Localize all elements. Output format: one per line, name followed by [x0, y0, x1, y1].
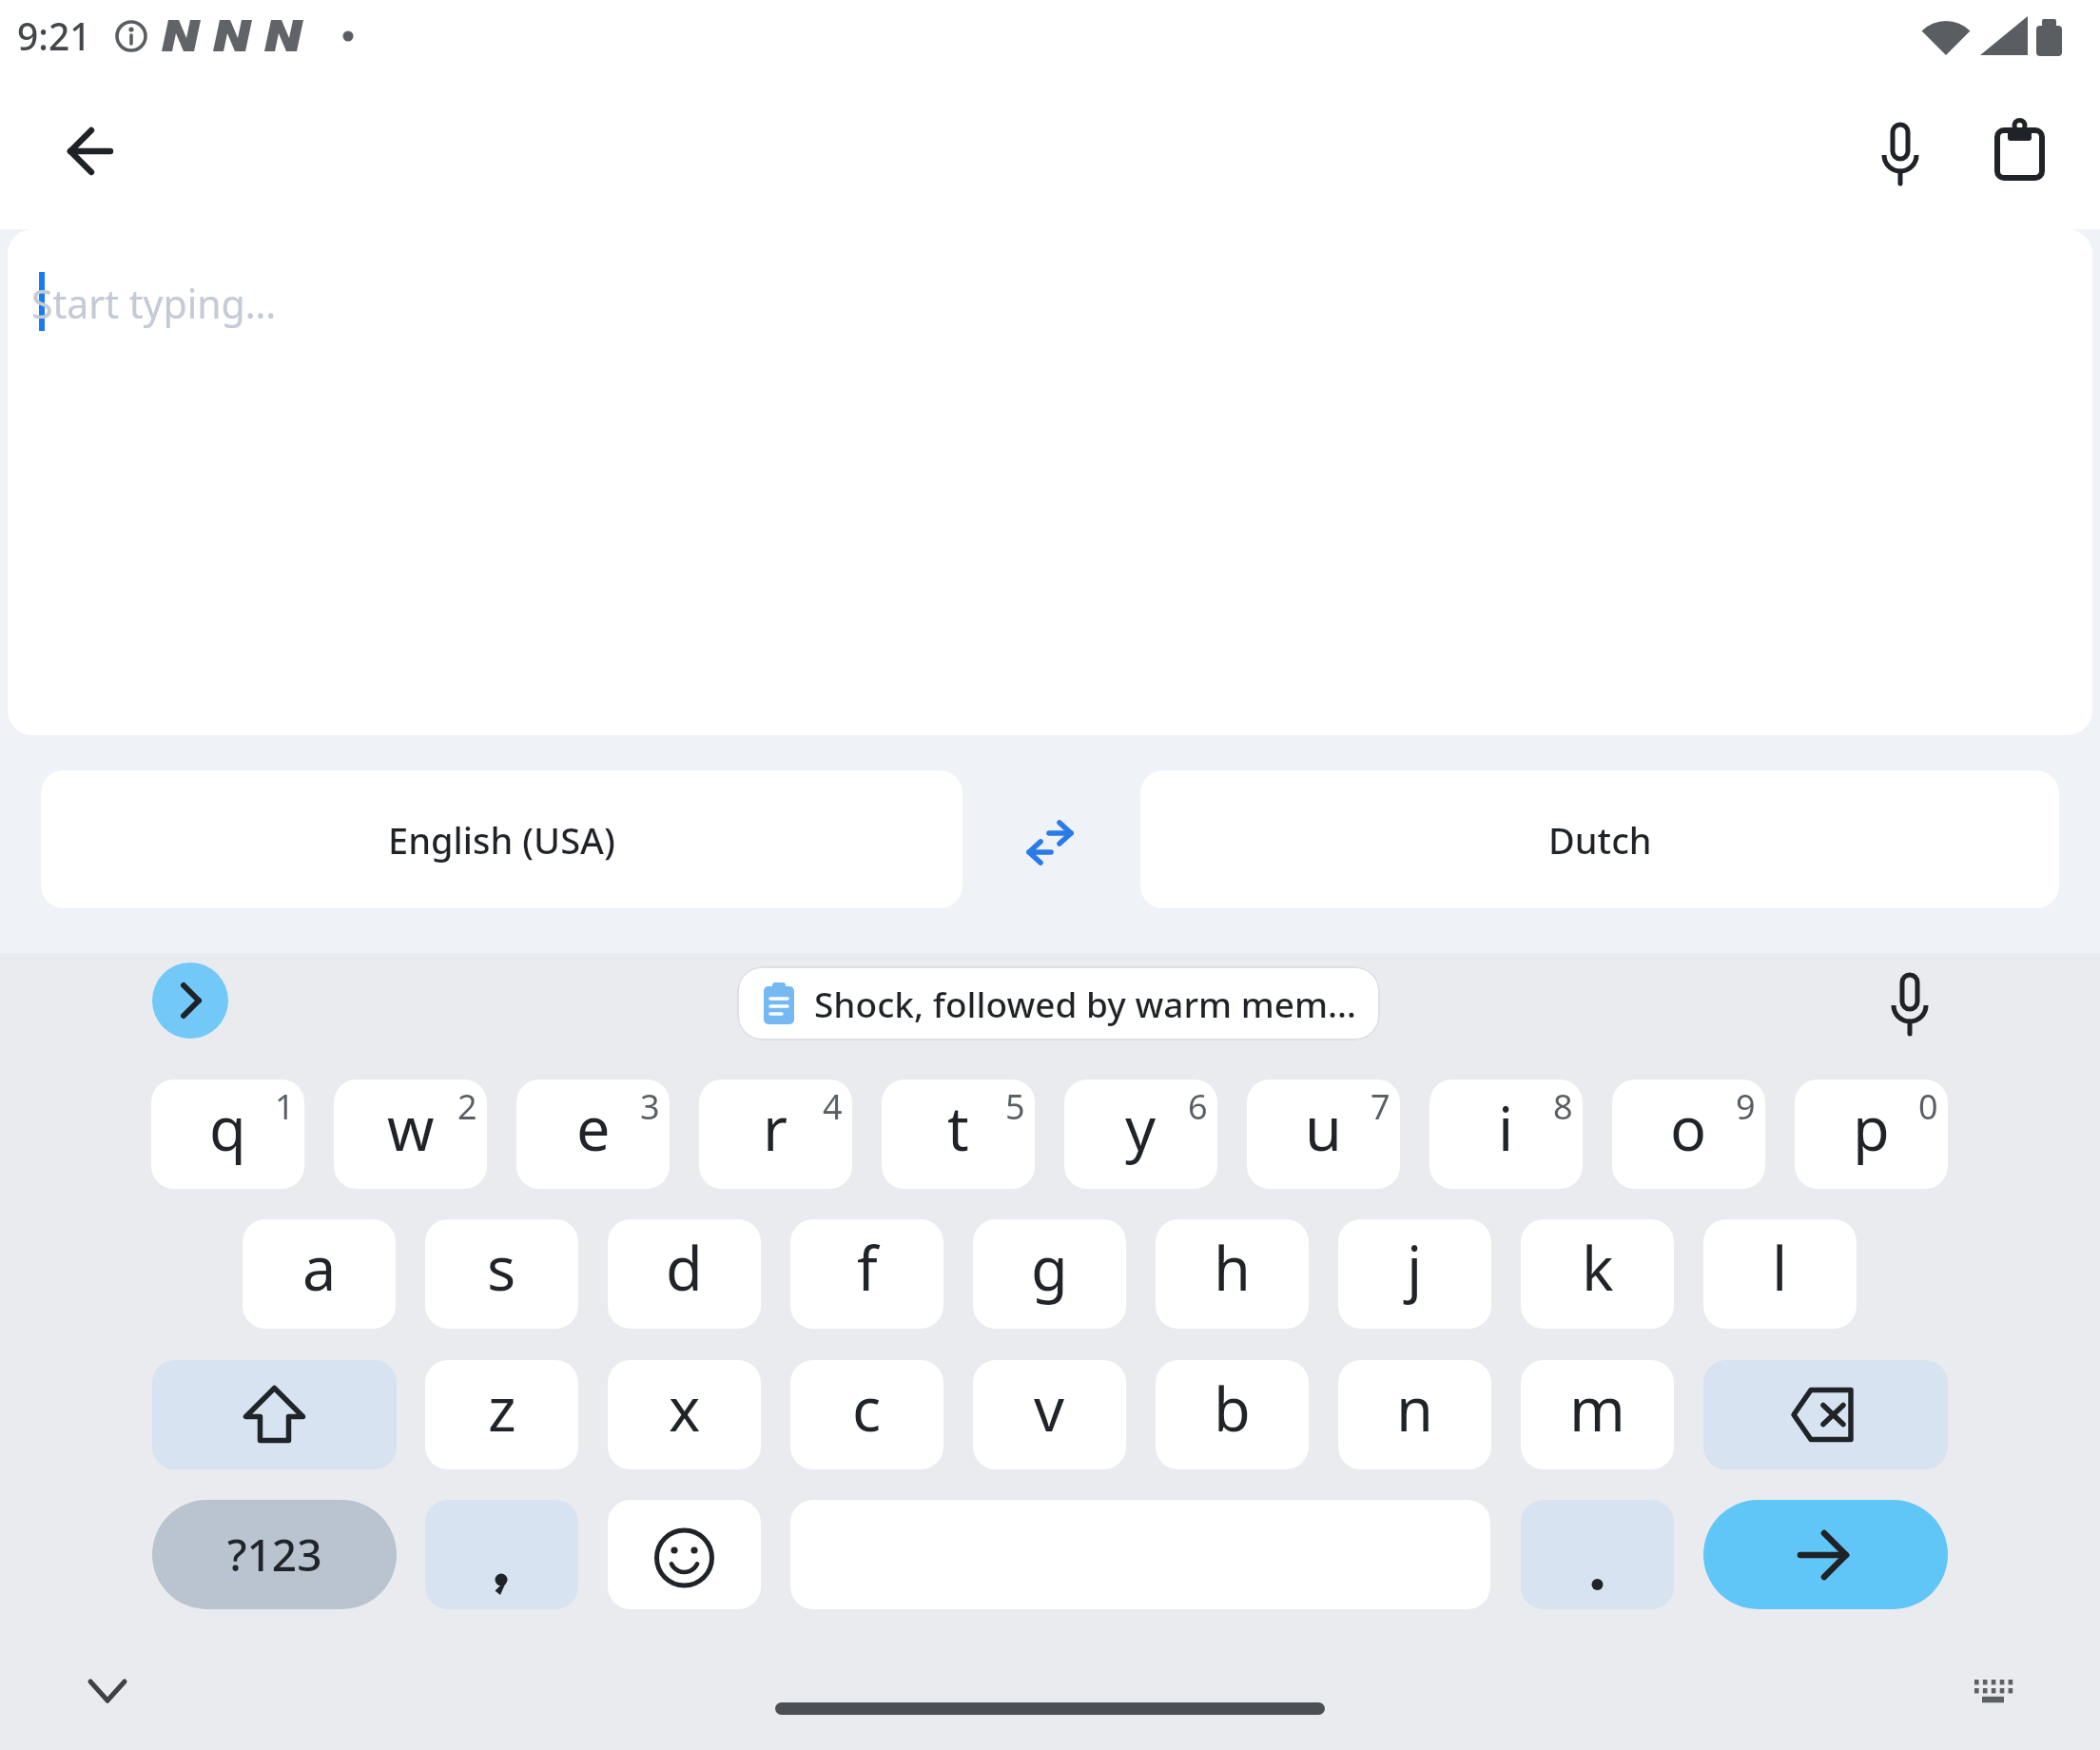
staticText: o — [1670, 1087, 1707, 1169]
button[interactable]: k — [1521, 1219, 1674, 1329]
button[interactable]: b — [1156, 1360, 1309, 1469]
button[interactable]: i — [1429, 1079, 1583, 1189]
staticText: y — [1125, 1087, 1157, 1169]
button[interactable] — [608, 1500, 761, 1609]
button[interactable]: q — [151, 1079, 304, 1189]
staticText: Start typing… — [31, 277, 277, 330]
staticText: 9 — [1736, 1083, 1756, 1130]
staticText: 3 — [640, 1083, 660, 1130]
button[interactable] — [1969, 1674, 2018, 1712]
button[interactable]: Dutch — [1140, 770, 2059, 908]
staticText: d — [666, 1227, 703, 1309]
button[interactable]: w — [334, 1079, 487, 1189]
button[interactable] — [152, 1360, 397, 1469]
staticText: 2 — [457, 1083, 477, 1130]
button[interactable]: p — [1795, 1079, 1948, 1189]
button[interactable]: r — [699, 1079, 852, 1189]
button[interactable]: o — [1612, 1079, 1765, 1189]
button[interactable]: v — [973, 1360, 1126, 1469]
staticText: n — [1396, 1368, 1433, 1449]
staticText: 7 — [1371, 1083, 1390, 1130]
button[interactable]: English (USA) — [41, 770, 962, 908]
staticText: b — [1214, 1368, 1251, 1449]
button[interactable]: x — [608, 1360, 761, 1469]
staticText: 1 — [275, 1083, 295, 1130]
staticText: m — [1569, 1368, 1625, 1449]
button[interactable] — [84, 1670, 131, 1712]
staticText: 9:21 — [17, 10, 91, 61]
staticText: k — [1582, 1227, 1614, 1309]
staticText: t — [947, 1087, 969, 1169]
button[interactable] — [46, 107, 137, 198]
staticText: c — [852, 1368, 882, 1449]
button[interactable]: u — [1247, 1079, 1400, 1189]
button[interactable]: g — [973, 1219, 1126, 1329]
button[interactable]: j — [1338, 1219, 1491, 1329]
staticText: w — [387, 1087, 435, 1169]
staticText: r — [763, 1087, 788, 1169]
button[interactable]: n — [1338, 1360, 1491, 1469]
button[interactable]: s — [425, 1219, 578, 1329]
button[interactable] — [1703, 1500, 1948, 1609]
staticText: 4 — [823, 1083, 843, 1130]
button[interactable]: h — [1156, 1219, 1309, 1329]
staticText: x — [669, 1368, 701, 1449]
staticText: e — [576, 1087, 611, 1169]
staticText: i — [1498, 1087, 1514, 1169]
button[interactable]: l — [1703, 1219, 1857, 1329]
button[interactable]: m — [1521, 1360, 1674, 1469]
button[interactable]: ?123 — [152, 1500, 397, 1609]
button[interactable] — [8, 229, 2092, 735]
button[interactable]: z — [425, 1360, 578, 1469]
button[interactable]: t — [882, 1079, 1035, 1189]
staticText: s — [487, 1227, 516, 1309]
staticText: u — [1305, 1087, 1342, 1169]
staticText: v — [1034, 1368, 1065, 1449]
button[interactable] — [425, 1500, 578, 1609]
button[interactable] — [1521, 1500, 1674, 1609]
staticText: a — [302, 1227, 337, 1309]
staticText: l — [1772, 1227, 1788, 1309]
staticText: ?123 — [227, 1525, 322, 1585]
staticText: j — [1407, 1227, 1423, 1309]
staticText: q — [209, 1087, 246, 1169]
button[interactable] — [1858, 105, 1942, 196]
staticText: 0 — [1918, 1083, 1938, 1130]
button[interactable] — [1020, 812, 1080, 873]
staticText: z — [488, 1368, 516, 1449]
staticText: h — [1214, 1227, 1251, 1309]
staticText: Dutch — [1548, 815, 1652, 865]
staticText: Shock, followed by warm mem… — [814, 980, 1357, 1027]
button[interactable] — [775, 1702, 1325, 1715]
staticText: 5 — [1005, 1083, 1025, 1130]
button[interactable] — [152, 962, 228, 1039]
button[interactable] — [1868, 961, 1952, 1044]
staticText: 6 — [1188, 1083, 1208, 1130]
button[interactable] — [1703, 1360, 1948, 1469]
button[interactable]: d — [608, 1219, 761, 1329]
button[interactable]: c — [790, 1360, 943, 1469]
button[interactable]: y — [1064, 1079, 1217, 1189]
staticText: g — [1031, 1227, 1068, 1309]
staticText: p — [1853, 1087, 1890, 1169]
button[interactable]: a — [243, 1219, 396, 1329]
button[interactable] — [1986, 112, 2054, 188]
button[interactable]: Shock, followed by warm mem… — [737, 966, 1380, 1040]
staticText: 8 — [1553, 1083, 1573, 1130]
button[interactable]: e — [516, 1079, 670, 1189]
staticText: f — [857, 1227, 878, 1309]
staticText: English (USA) — [388, 815, 615, 865]
button[interactable]: f — [790, 1219, 943, 1329]
